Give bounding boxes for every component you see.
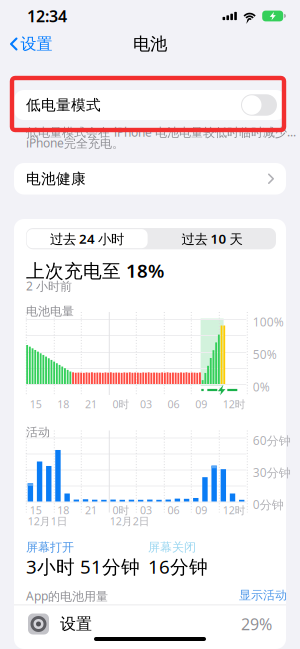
staticText: 设置 (20, 34, 52, 54)
staticText: 过去 10 天 (181, 230, 242, 247)
staticText: 12时 (223, 503, 246, 517)
button[interactable]: 电池健康 (14, 163, 286, 194)
staticText: 09 (195, 503, 207, 517)
staticText: 电池健康 (26, 170, 86, 188)
button[interactable]: 设置 (0, 30, 60, 58)
staticText: 12月2日 (110, 514, 150, 528)
staticText: 16分钟 (148, 554, 208, 579)
button[interactable]: 过去 10 天 (148, 228, 276, 249)
staticText: 18 (57, 503, 69, 517)
staticText: 0时 (112, 503, 129, 517)
staticText: 0时 (112, 397, 129, 411)
staticText: 设置 (60, 614, 92, 634)
staticText: 活动 (26, 425, 50, 440)
staticText: 0% (253, 379, 270, 395)
staticText: 12月1日 (28, 514, 68, 528)
staticText: 21 (85, 397, 97, 411)
staticText: 15 (30, 397, 42, 411)
staticText: 06 (168, 503, 180, 517)
staticText: 过去 24 小时 (50, 230, 124, 247)
staticText: 电池电量 (26, 304, 74, 319)
staticText: 29% (241, 613, 272, 635)
staticText: 12:34 (27, 5, 67, 27)
staticText: 100% (253, 314, 284, 330)
staticText: 06 (168, 397, 180, 411)
staticText: 15 (30, 503, 42, 517)
button[interactable]: 显示活动 (239, 588, 287, 603)
staticText: 60分钟 (253, 432, 291, 448)
staticText: 屏幕打开 (26, 540, 74, 555)
staticText: 30分钟 (253, 464, 291, 480)
staticText: 2 小时前 (26, 278, 72, 294)
staticText: 12时 (223, 397, 246, 411)
staticText: 50% (253, 346, 277, 362)
staticText: 3小时 51分钟 (26, 554, 140, 579)
staticText: 低电量模式会在 iPhone 电池电量较低时临时减少后台活动，直至 (26, 124, 300, 140)
button[interactable]: 设置 (14, 605, 286, 643)
staticText: 18 (57, 397, 69, 411)
staticText: 上次充电至 18% (26, 258, 164, 283)
staticText: iPhone完全充电。 (26, 135, 124, 151)
staticText: 09 (195, 397, 207, 411)
staticText: 03 (140, 503, 152, 517)
staticText: 03 (140, 397, 152, 411)
staticText: 21 (85, 503, 97, 517)
button[interactable]: 过去 24 小时 (26, 228, 148, 249)
staticText: App的电池用量 (26, 588, 108, 604)
staticText: 低电量模式 (26, 96, 101, 114)
staticText: 电池 (133, 33, 167, 55)
staticText: 0分钟 (253, 496, 284, 512)
staticText: 屏幕关闭 (148, 540, 196, 555)
staticText: 显示活动 (239, 588, 287, 603)
button[interactable]: 低电量模式 (14, 90, 286, 120)
